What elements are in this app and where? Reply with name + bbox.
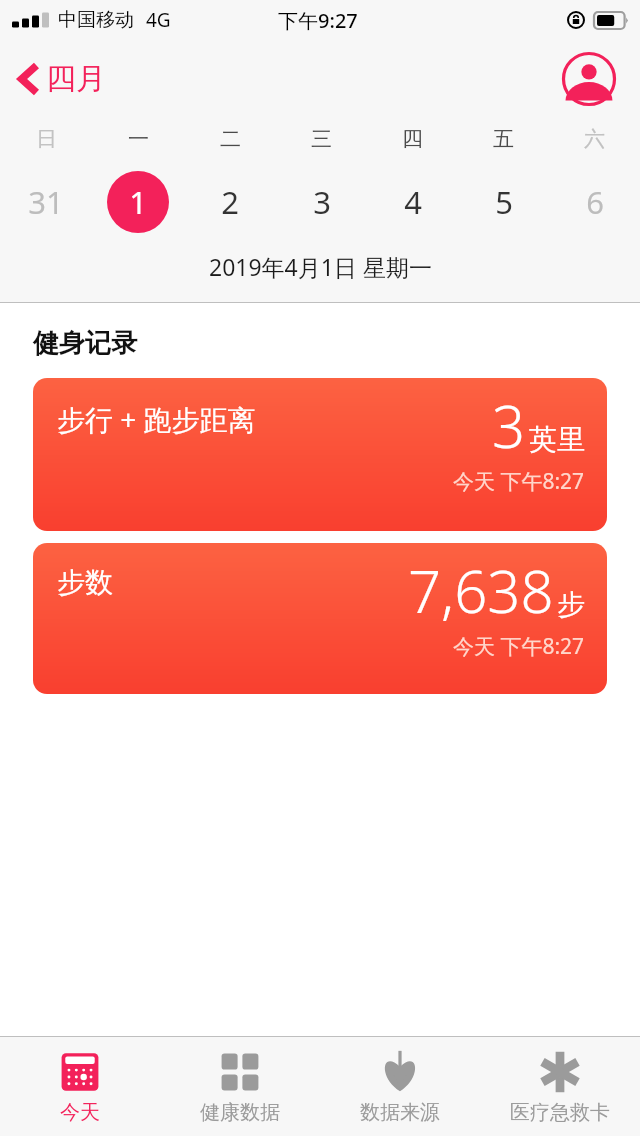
staticText: 二	[220, 126, 241, 152]
staticText: 4	[404, 181, 422, 223]
staticText: 一	[128, 126, 149, 152]
staticText: 4G	[146, 7, 171, 33]
button[interactable]: 健康数据	[160, 1037, 320, 1136]
button[interactable]: 5	[458, 160, 549, 244]
staticText: 中国移动	[58, 8, 134, 32]
staticText: 六	[584, 126, 605, 152]
staticText: 5	[495, 181, 513, 223]
button[interactable]: 四月	[14, 54, 110, 104]
staticText: 今天	[60, 1100, 100, 1125]
staticText: 31	[28, 181, 64, 223]
staticText: 健康数据	[200, 1100, 280, 1125]
button[interactable]: Profile	[562, 52, 616, 106]
button[interactable]: 4	[367, 160, 458, 244]
button[interactable]: 6	[549, 160, 640, 244]
button[interactable]: 31	[0, 160, 92, 244]
button[interactable]: 今天	[0, 1037, 160, 1136]
staticText: 步行 + 跑步距离	[57, 400, 256, 438]
button[interactable]: 医疗急救卡	[480, 1037, 640, 1136]
staticText: 五	[493, 126, 514, 152]
staticText: 步	[557, 587, 585, 622]
button[interactable]: 数据来源	[320, 1037, 480, 1136]
staticText: 数据来源	[360, 1100, 440, 1125]
button[interactable]: 3	[276, 160, 367, 244]
staticText: 英里	[529, 422, 585, 457]
button[interactable]: 步数	[33, 543, 607, 694]
staticText: 3	[492, 386, 526, 465]
staticText: 医疗急救卡	[510, 1100, 610, 1125]
button[interactable]: 1	[92, 160, 184, 244]
staticText: 2019年4月1日 星期一	[209, 251, 432, 282]
button[interactable]: 步行 + 跑步距离	[33, 378, 607, 531]
staticText: 今天 下午8:27	[453, 467, 585, 496]
staticText: 6	[586, 181, 604, 223]
staticText: 下午9:27	[278, 7, 358, 34]
staticText: 2	[221, 181, 239, 223]
staticText: 四月	[46, 60, 106, 98]
staticText: 步数	[57, 565, 113, 600]
staticText: 三	[311, 126, 332, 152]
staticText: 今天 下午8:27	[453, 632, 585, 661]
button[interactable]: 2	[184, 160, 276, 244]
staticText: 7,638	[408, 551, 554, 630]
staticText: 健身记录	[33, 327, 137, 360]
staticText: 四	[402, 126, 423, 152]
staticText: 1	[129, 181, 147, 223]
staticText: 3	[313, 181, 331, 223]
staticText: 日	[36, 126, 57, 152]
